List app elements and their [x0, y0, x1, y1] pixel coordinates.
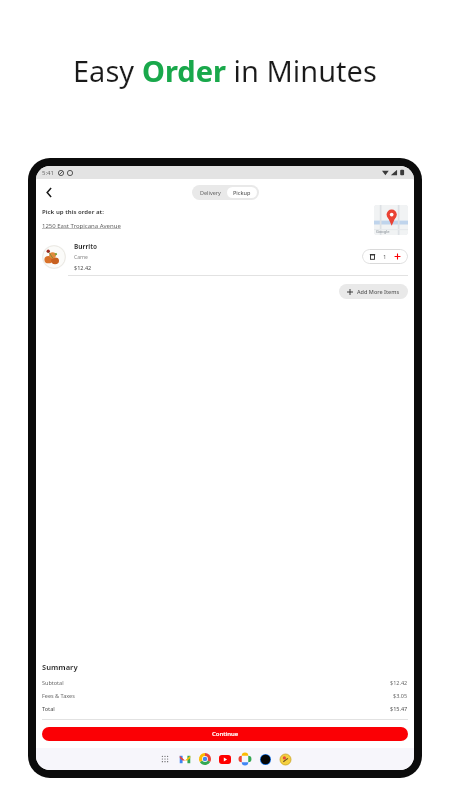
staticText: Fees & Taxes: [42, 692, 75, 699]
staticText: Google: [376, 229, 390, 234]
staticText: Pickup: [233, 189, 251, 196]
staticText: Summary: [42, 662, 78, 672]
button[interactable]: Gmail: [178, 752, 192, 766]
staticText: Add More Items: [357, 288, 400, 295]
staticText: Order: [142, 51, 226, 90]
button[interactable]: Pickup: [227, 187, 257, 198]
button[interactable]: Profile: [278, 752, 292, 766]
staticText: Total: [42, 705, 55, 712]
staticText: Pick up this order at:: [42, 208, 104, 216]
button[interactable]: 1250 East Tropicana Avenue: [42, 222, 121, 230]
button[interactable]: Delivery: [194, 187, 227, 198]
staticText: Carne: [74, 254, 88, 261]
button[interactable]: Continue: [42, 727, 408, 741]
button[interactable]: YouTube: [218, 752, 232, 766]
button[interactable]: Google Photos: [238, 752, 252, 766]
staticText: 1250 East Tropicana Avenue: [42, 222, 121, 230]
staticText: in Minutes: [226, 51, 377, 90]
button[interactable]: Remove item: [368, 252, 377, 261]
button[interactable]: Add More Items: [339, 284, 408, 299]
button[interactable]: Add one: [393, 252, 402, 261]
button[interactable]: Back: [40, 183, 58, 201]
button[interactable]: Burrito: [42, 242, 408, 271]
staticText: Continue: [212, 730, 239, 738]
staticText: 1: [383, 253, 387, 261]
staticText: $15.47: [390, 705, 408, 712]
staticText: $3.05: [393, 692, 408, 699]
button[interactable]: Remove item: [362, 249, 408, 264]
staticText: Easy: [73, 51, 142, 90]
button[interactable]: Open map: [374, 205, 408, 235]
staticText: $12.42: [74, 264, 92, 271]
staticText: $12.42: [390, 679, 408, 686]
button[interactable]: Meet: [258, 752, 272, 766]
staticText: Delivery: [200, 189, 221, 196]
staticText: Burrito: [74, 242, 98, 251]
button[interactable]: Chrome: [198, 752, 212, 766]
button[interactable]: All apps: [158, 752, 172, 766]
staticText: 5:41: [42, 169, 54, 177]
staticText: Subtotal: [42, 679, 64, 686]
